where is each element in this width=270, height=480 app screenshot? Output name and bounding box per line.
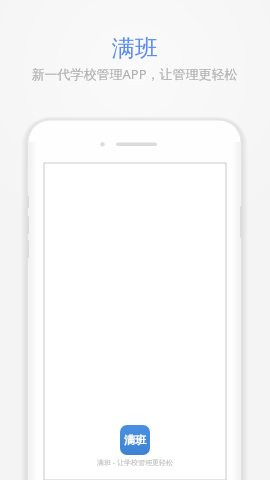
- button[interactable]: 满班 app icon: [120, 425, 150, 455]
